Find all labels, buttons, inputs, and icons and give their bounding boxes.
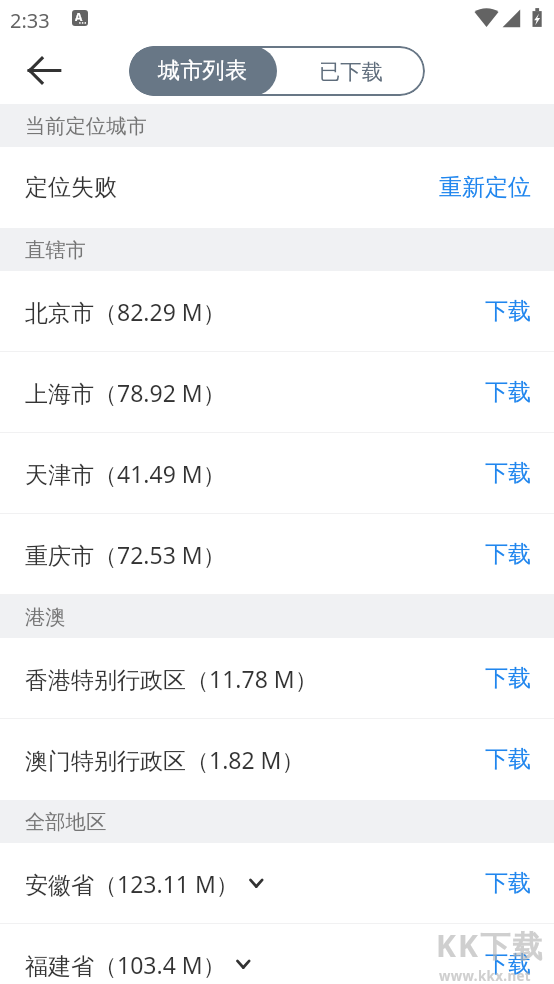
staticText: 下载 (485, 869, 531, 898)
staticText: A (75, 10, 83, 24)
button[interactable]: 重庆市（72.53 M） (0, 514, 554, 595)
button[interactable]: 天津市（41.49 M） (0, 433, 554, 514)
button[interactable]: 已下载 (277, 46, 425, 96)
staticText: 天津市（41.49 M） (25, 458, 226, 489)
button[interactable]: 城市列表 (129, 46, 277, 96)
button[interactable]: 上海市（78.92 M） (0, 352, 554, 433)
button[interactable]: 下载 (485, 869, 531, 898)
button[interactable]: 澳门特别行政区（1.82 M） (0, 719, 554, 800)
staticText: 香港特别行政区（11.78 M） (25, 663, 318, 694)
staticText: 下载 (485, 950, 531, 979)
staticText: 上海市（78.92 M） (25, 377, 226, 408)
button[interactable]: 定位失败 (0, 147, 554, 228)
staticText: KK下载 (436, 925, 545, 966)
staticText: 重庆市（72.53 M） (25, 539, 226, 570)
button[interactable]: 下载 (485, 664, 531, 693)
staticText: 港澳 (25, 604, 66, 630)
button[interactable]: 下载 (485, 459, 531, 488)
staticText: 安徽省（123.11 M） (25, 868, 239, 899)
button[interactable]: 重新定位 (439, 173, 531, 202)
staticText: 福建省（103.4 M） (25, 949, 226, 980)
staticText: 2:33 (10, 7, 50, 34)
button[interactable]: 下载 (485, 950, 531, 979)
button[interactable]: 下载 (485, 378, 531, 407)
staticText: 下载 (485, 540, 531, 569)
staticText: 定位失败 (25, 173, 117, 202)
button[interactable]: 下载 (485, 297, 531, 326)
staticText: 全部地区 (25, 809, 107, 835)
staticText: 城市列表 (158, 57, 248, 85)
button[interactable]: 福建省（103.4 M） (0, 924, 554, 984)
other: Expand (236, 960, 251, 970)
staticText: 重新定位 (439, 173, 531, 202)
staticText: 已下载 (319, 58, 383, 85)
button[interactable]: Back (18, 44, 70, 96)
staticText: 当前定位城市 (25, 113, 147, 139)
button[interactable]: 香港特别行政区（11.78 M） (0, 638, 554, 719)
staticText: www.kkx.net (439, 967, 532, 984)
staticText: 下载 (485, 378, 531, 407)
staticText: 澳门特别行政区（1.82 M） (25, 744, 305, 775)
staticText: 下载 (485, 664, 531, 693)
staticText: 北京市（82.29 M） (25, 296, 226, 327)
button[interactable]: 安徽省（123.11 M） (0, 843, 554, 924)
staticText: 下载 (485, 459, 531, 488)
staticText: 直辖市 (25, 237, 86, 263)
button[interactable]: 下载 (485, 540, 531, 569)
button[interactable]: 下载 (485, 745, 531, 774)
button[interactable]: 北京市（82.29 M） (0, 271, 554, 352)
staticText: 下载 (485, 297, 531, 326)
other: Expand (249, 879, 264, 889)
staticText: 下载 (485, 745, 531, 774)
